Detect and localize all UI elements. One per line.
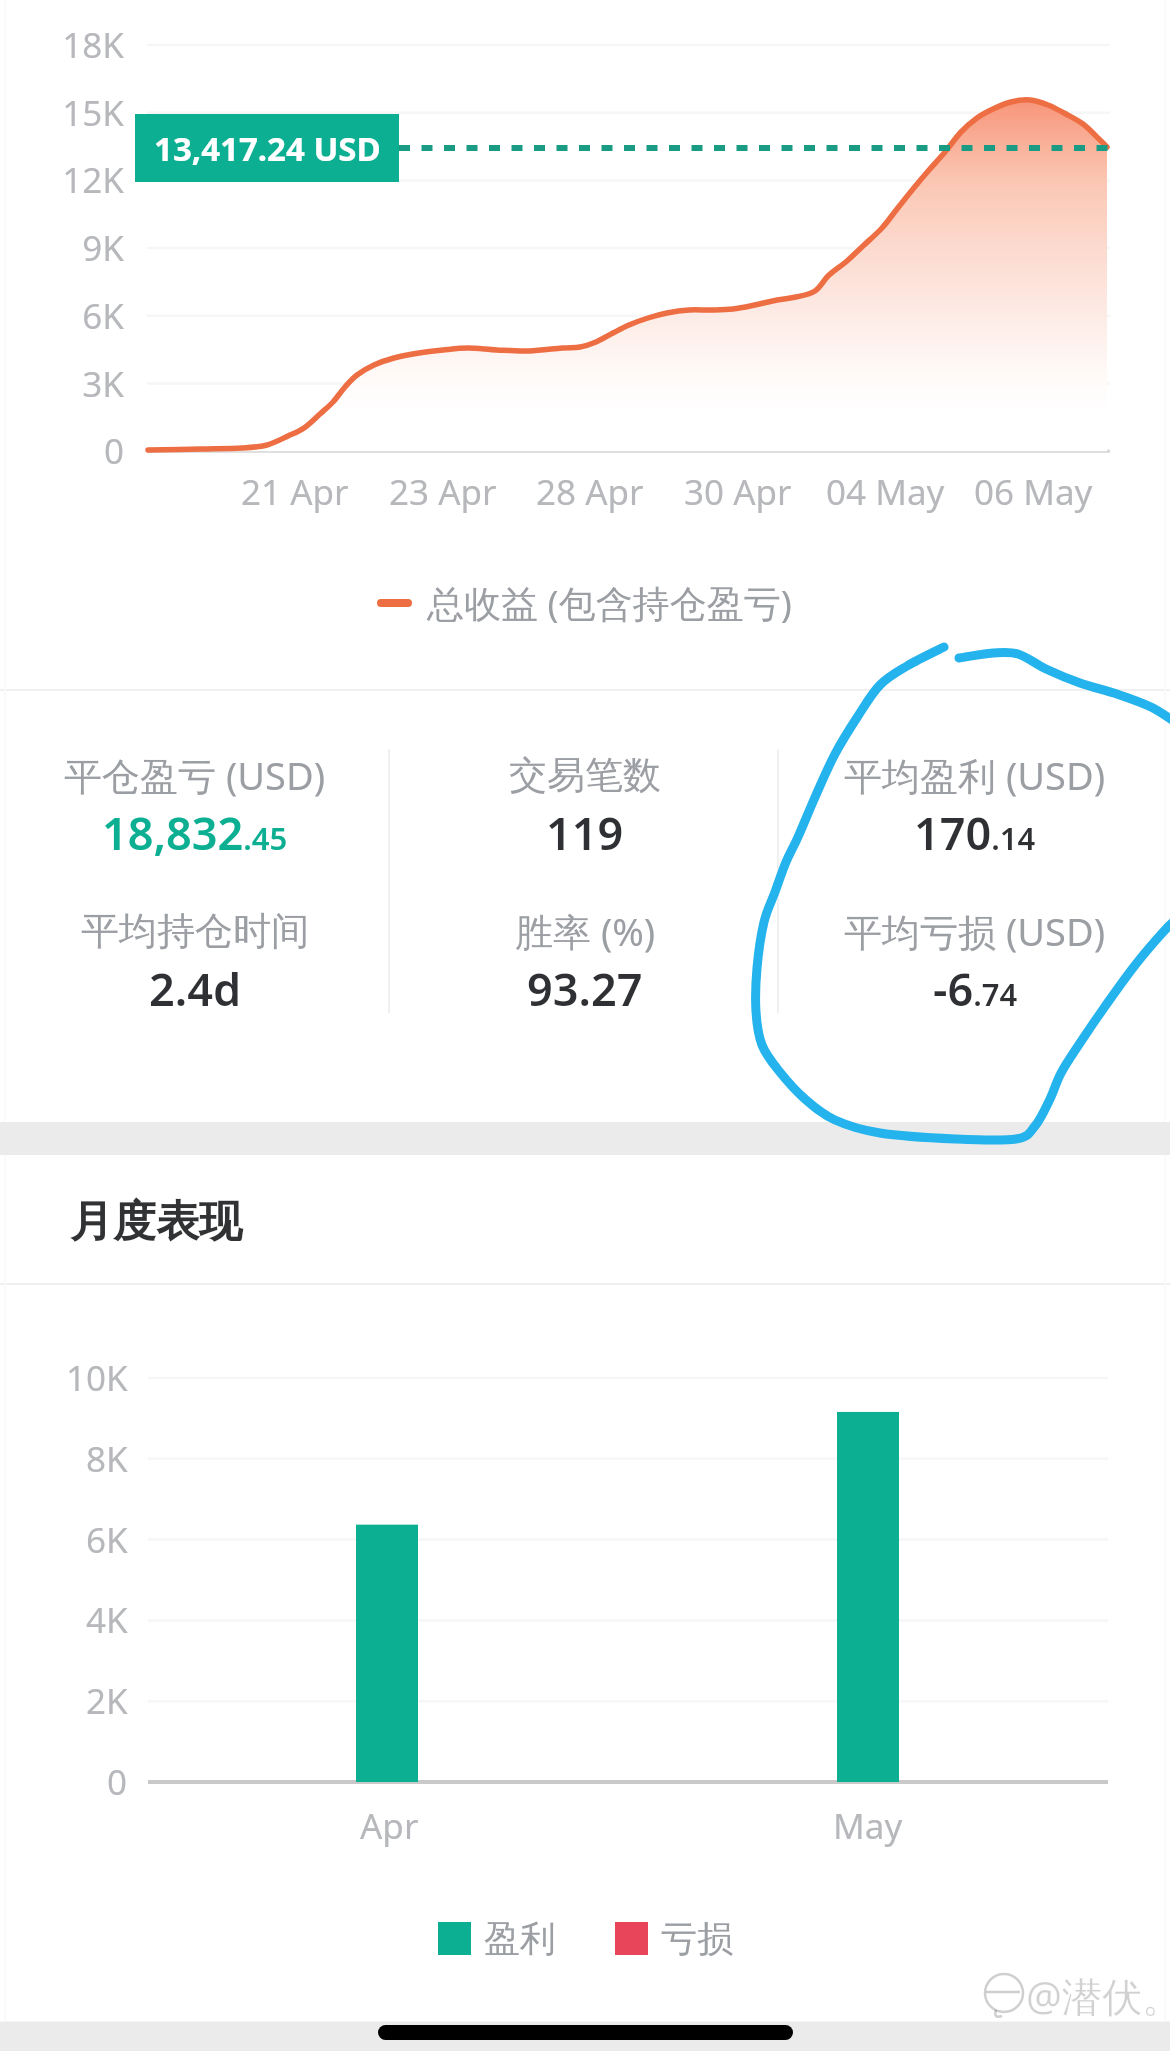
staticText: -6.74 [933, 958, 1018, 1019]
staticText: 6K [86, 1516, 128, 1564]
staticText: 月度表现 [70, 1195, 242, 1249]
staticText: 交易笔数 [509, 751, 661, 799]
staticText: 盈利 [484, 1916, 556, 1961]
button[interactable]: 亏损 [615, 1916, 733, 1961]
button[interactable]: 平均持仓时间 [0, 905, 390, 1019]
staticText: 4K [86, 1596, 128, 1644]
staticText: Apr [360, 1802, 419, 1850]
staticText: 06 May [974, 468, 1093, 516]
other: 月度盈亏柱状图 [0, 1285, 1170, 2021]
staticText: 6K [82, 292, 124, 340]
staticText: May [833, 1802, 903, 1850]
staticText: 9K [82, 224, 124, 272]
staticText: 93.27 [527, 958, 643, 1019]
staticText: 119 [546, 802, 624, 863]
staticText: 3K [82, 360, 124, 408]
button[interactable]: 13,417.24 USD [135, 114, 399, 182]
staticText: 21 Apr [241, 468, 349, 516]
staticText: 平均盈利 (USD) [844, 749, 1106, 801]
staticText: @潜伏。 [1026, 1968, 1170, 2023]
button[interactable]: 平仓盈亏 (USD) [0, 749, 390, 863]
staticText: 04 May [826, 468, 945, 516]
staticText: 平均亏损 (USD) [844, 905, 1106, 957]
staticText: 15K [62, 89, 124, 137]
staticText: 平均持仓时间 [81, 907, 309, 955]
button[interactable]: 平均亏损 (USD) [780, 905, 1170, 1019]
staticText: 平仓盈亏 (USD) [64, 749, 326, 801]
staticText: 亏损 [661, 1916, 733, 1961]
staticText: 23 Apr [389, 468, 497, 516]
other: 总收益曲线图 [0, 0, 1170, 537]
button[interactable]: 盈利 [438, 1916, 556, 1961]
button[interactable]: 总收益 (包含持仓盈亏) [377, 577, 792, 628]
button[interactable]: 胜率 (%) [390, 905, 780, 1019]
staticText: 胜率 (%) [515, 905, 656, 957]
button[interactable]: 月度表现 [0, 1155, 1170, 1283]
staticText: 12K [62, 156, 124, 204]
button[interactable]: 平均盈利 (USD) [780, 749, 1170, 863]
staticText: 总收益 (包含持仓盈亏) [427, 577, 792, 628]
staticText: 13,417.24 USD [154, 126, 381, 171]
staticText: 2.4d [149, 958, 242, 1019]
staticText: 18K [62, 21, 124, 69]
staticText: 8K [86, 1435, 128, 1483]
staticText: 28 Apr [536, 468, 644, 516]
button[interactable]: 交易笔数 [390, 749, 780, 863]
staticText: 30 Apr [684, 468, 792, 516]
staticText: 170.14 [914, 802, 1036, 863]
staticText: 2K [86, 1677, 128, 1725]
staticText: 0 [107, 1758, 128, 1806]
staticText: 0 [103, 427, 124, 475]
staticText: 10K [66, 1354, 128, 1402]
staticText: 18,832.45 [102, 802, 288, 863]
